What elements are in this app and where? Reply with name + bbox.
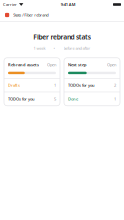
staticText: 1 — [114, 96, 116, 102]
button[interactable]: Stats / Fiber rebrand — [0, 9, 124, 21]
staticText: 5 — [54, 96, 56, 102]
button[interactable]: Drafts — [4, 79, 60, 92]
button[interactable]: Done — [64, 92, 120, 106]
staticText: Next step — [68, 62, 87, 67]
staticText: Done — [68, 96, 78, 102]
staticText: • — [53, 45, 55, 51]
staticText: 1 week — [33, 45, 45, 51]
button[interactable]: TODOs for you — [4, 92, 60, 106]
button[interactable]: Next step — [64, 58, 120, 78]
staticText: Carrier — [3, 2, 17, 7]
staticText: 1 — [54, 83, 56, 88]
staticText: 9:41 AM — [61, 2, 76, 7]
staticText: Fiber rebrand stats — [33, 33, 91, 41]
staticText: TODOs for you — [8, 96, 35, 102]
staticText: Rebrand assets — [8, 62, 39, 67]
button[interactable]: TODOs for you — [64, 79, 120, 92]
staticText: Stats / Fiber rebrand — [13, 12, 48, 18]
staticText: Open — [47, 62, 56, 67]
staticText: Open — [107, 62, 116, 67]
staticText: 2 — [114, 83, 116, 88]
staticText: TODOs for you — [68, 83, 95, 88]
staticText: Drafts — [8, 83, 20, 88]
button[interactable]: Rebrand assets — [4, 58, 60, 78]
staticText: before and after — [63, 45, 90, 51]
